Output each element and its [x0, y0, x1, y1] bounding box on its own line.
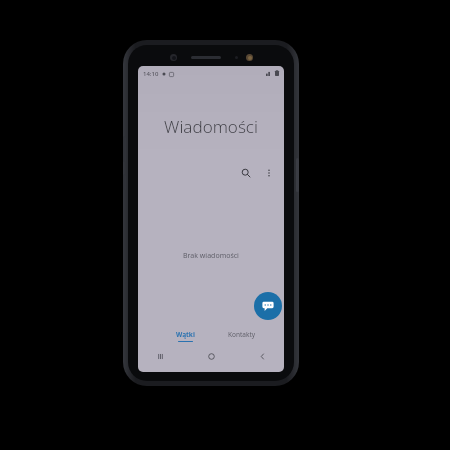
- button[interactable]: Więcej opcji: [260, 164, 278, 182]
- button[interactable]: Kontakty: [224, 329, 260, 340]
- staticText: Brak wiadomości: [183, 251, 239, 261]
- button[interactable]: Ekran główny: [203, 348, 219, 364]
- button[interactable]: Ostatnie: [152, 348, 168, 364]
- button[interactable]: Szukaj: [237, 164, 255, 182]
- staticText: Wiadomości: [164, 115, 258, 138]
- staticText: 14:10: [143, 70, 159, 78]
- staticText: Kontakty: [228, 330, 256, 339]
- staticText: Wątki: [176, 330, 195, 339]
- button[interactable]: Wstecz: [254, 348, 270, 364]
- button[interactable]: Nowa wiadomość: [254, 292, 282, 320]
- button[interactable]: Wątki: [172, 329, 199, 343]
